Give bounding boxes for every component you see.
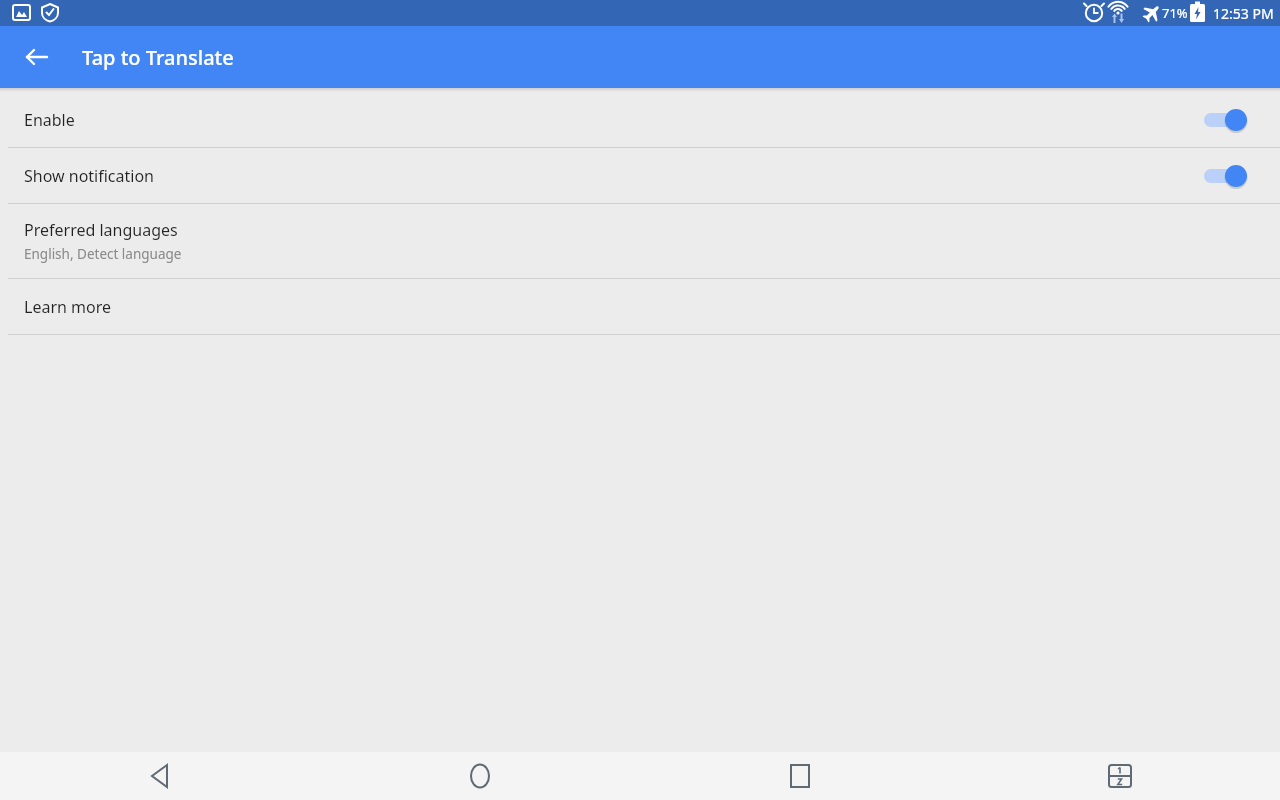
staticText: 12:53 PM	[1213, 4, 1274, 23]
button[interactable]: Recent apps	[640, 752, 960, 800]
button[interactable]: Enable	[0, 92, 1280, 147]
staticText: Learn more	[24, 296, 111, 318]
button[interactable]: Home	[320, 752, 640, 800]
button[interactable]: Split screen	[960, 752, 1280, 800]
staticText: Enable	[24, 109, 1202, 131]
button[interactable]: Preferred languages	[0, 204, 1280, 278]
button[interactable]: Learn more	[0, 279, 1280, 334]
button[interactable]: Back	[0, 752, 320, 800]
staticText: Show notification	[24, 165, 1202, 187]
staticText: English, Detect language	[24, 245, 182, 263]
staticText: Tap to Translate	[82, 44, 234, 71]
button[interactable]: Show notification	[0, 148, 1280, 203]
staticText: Preferred languages	[24, 219, 178, 241]
staticText: 71%	[1162, 4, 1188, 22]
button[interactable]: Back	[13, 33, 61, 81]
